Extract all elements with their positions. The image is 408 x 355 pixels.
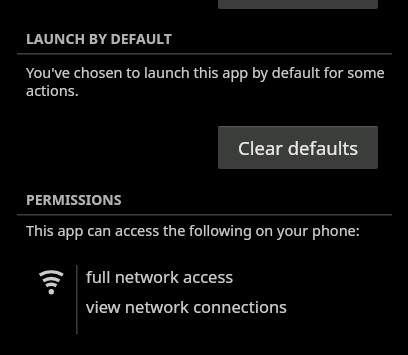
- staticText: This app can access the following on you…: [26, 220, 360, 240]
- staticText: LAUNCH BY DEFAULT: [26, 29, 172, 48]
- button[interactable]: view network connections: [86, 292, 391, 322]
- button[interactable]: Network permissions: [17, 262, 391, 338]
- staticText: view network connections: [86, 295, 288, 317]
- button[interactable]: full network access: [86, 262, 391, 292]
- staticText: PERMISSIONS: [26, 190, 122, 209]
- other: Network permissions: [17, 262, 76, 338]
- button[interactable]: Clear defaults: [218, 126, 378, 169]
- staticText: full network access: [86, 265, 234, 287]
- staticText: You've chosen to launch this app by defa…: [26, 62, 398, 100]
- staticText: Clear defaults: [238, 135, 359, 160]
